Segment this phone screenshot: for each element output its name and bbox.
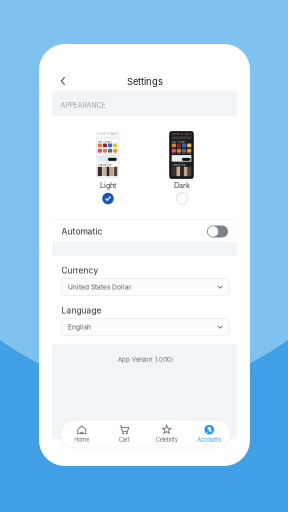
button[interactable]: United States Dollar <box>61 278 229 295</box>
staticText: Currency <box>61 265 98 275</box>
staticText: United States Dollar <box>68 283 131 291</box>
staticText: App Version 1.0(10) <box>118 356 173 363</box>
staticText: Celebrity <box>156 436 178 443</box>
staticText: Trending Now <box>98 164 112 166</box>
staticText: Shop Category <box>172 140 186 143</box>
staticText: Deliver to <box>98 133 109 136</box>
staticText: Automatic <box>61 226 102 237</box>
button[interactable]: Light theme selected <box>99 189 117 207</box>
button[interactable]: Accounts <box>188 420 230 448</box>
staticText: Sign In <box>184 133 191 136</box>
staticText: Deliver to <box>172 133 183 136</box>
staticText: Settings <box>127 76 163 87</box>
staticText: Accounts <box>197 436 221 443</box>
button[interactable]: Dark theme <box>173 189 191 207</box>
staticText: Cart <box>119 436 130 443</box>
button[interactable]: Cart <box>103 420 145 448</box>
staticText: Sign In <box>110 133 117 136</box>
staticText: Dark <box>174 181 190 190</box>
staticText: Trending Now <box>172 164 186 166</box>
button[interactable]: Celebrity <box>145 420 188 448</box>
staticText: APPEARANCE <box>60 101 105 109</box>
staticText: Shop Category <box>98 140 112 143</box>
button[interactable]: Automatic <box>52 220 237 242</box>
staticText: Language <box>61 305 101 315</box>
staticText: English <box>68 323 91 331</box>
staticText: Home <box>74 436 89 443</box>
button[interactable]: English <box>61 318 229 335</box>
staticText: Light <box>100 181 116 190</box>
button[interactable]: Back <box>52 70 74 92</box>
button[interactable]: Home <box>60 420 103 448</box>
